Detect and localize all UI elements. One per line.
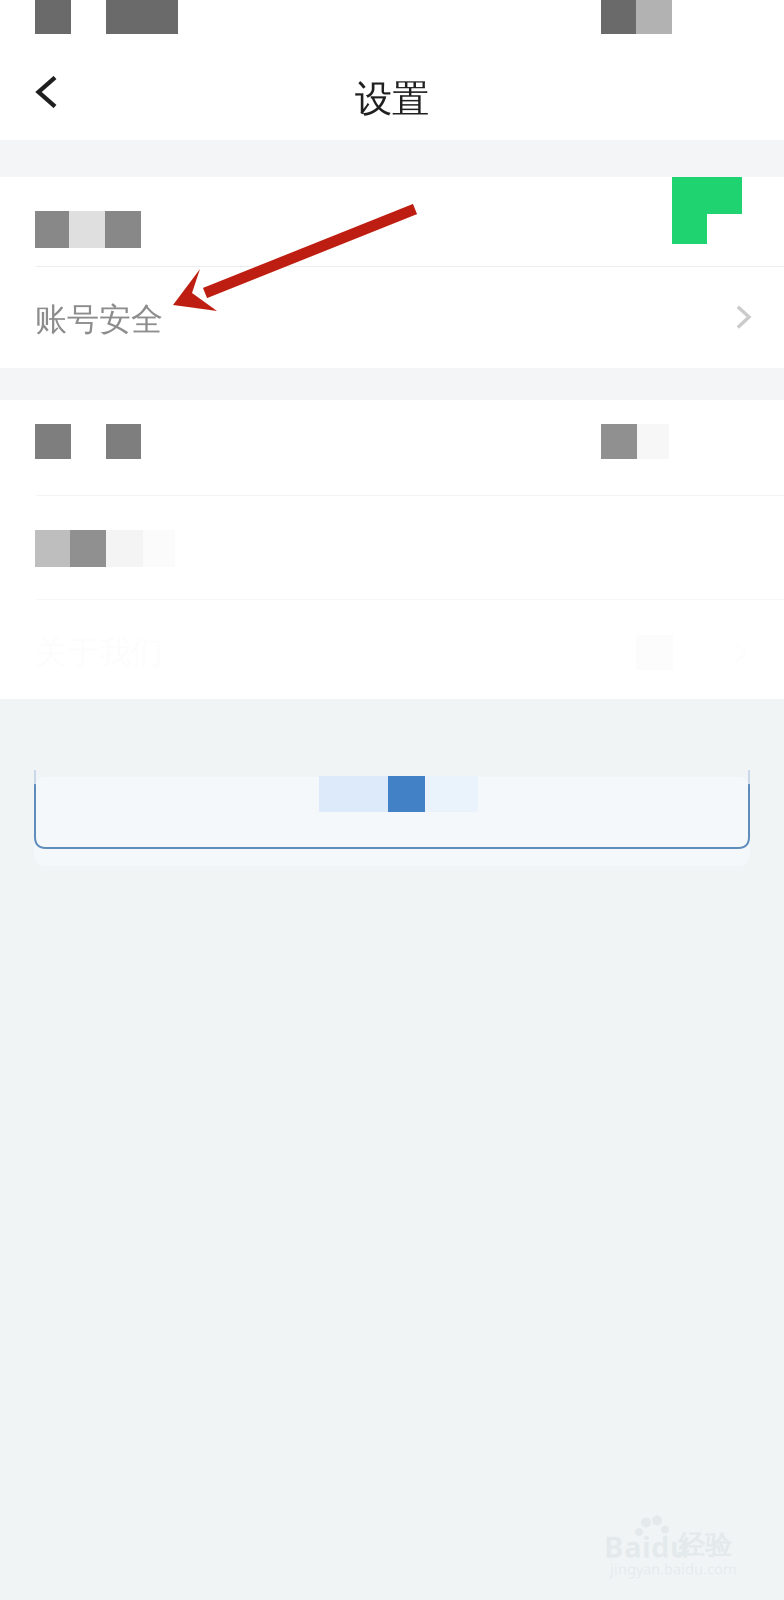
staticText: Baidu bbox=[604, 1527, 689, 1566]
staticText: 账号安全 bbox=[35, 300, 163, 339]
staticText: 经验 bbox=[678, 1529, 732, 1562]
button[interactable]: Log out bbox=[34, 760, 750, 849]
button[interactable]: Back bbox=[0, 44, 94, 140]
button[interactable] bbox=[0, 177, 784, 266]
button[interactable]: 账号安全 bbox=[0, 267, 784, 368]
staticText: 设置 bbox=[355, 76, 429, 122]
button[interactable] bbox=[0, 400, 784, 495]
staticText: jingyan.baidu.com bbox=[610, 1559, 737, 1578]
button[interactable] bbox=[0, 496, 784, 600]
